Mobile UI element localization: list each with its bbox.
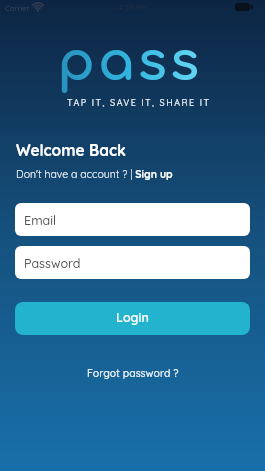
button[interactable]: Password <box>15 246 250 279</box>
staticText: Carrier <box>5 3 30 12</box>
button[interactable]: Email <box>15 203 250 236</box>
staticText: TAP IT, SAVE IT, SHARE IT <box>67 97 211 108</box>
staticText: 4:59 PM <box>118 2 148 12</box>
button[interactable]: Forgot password ? <box>87 366 179 379</box>
staticText: Welcome Back <box>16 140 126 159</box>
staticText: Login <box>116 309 149 325</box>
staticText: pass <box>57 32 203 92</box>
staticText: Password <box>24 255 81 271</box>
button[interactable]: Login <box>15 302 250 335</box>
button[interactable]: Don't have a account ? | Sign up <box>16 167 173 180</box>
staticText: Email <box>24 212 57 228</box>
